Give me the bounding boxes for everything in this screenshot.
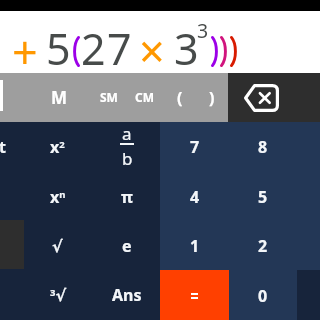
button[interactable]: ) [193, 73, 231, 122]
staticText: 7 [107, 19, 132, 78]
staticText: ) [209, 87, 215, 109]
staticText: ( [177, 87, 183, 109]
staticText: + [12, 21, 38, 82]
staticText: 5 [258, 186, 268, 208]
button[interactable]: t [0, 122, 37, 172]
button[interactable]: M [40, 73, 78, 122]
staticText: x2 [50, 136, 65, 158]
staticText: a [122, 122, 132, 145]
button[interactable]: ( [161, 73, 199, 122]
button[interactable]: 3√ [24, 270, 93, 320]
button[interactable]: π [92, 172, 161, 222]
staticText: Ans [112, 284, 142, 306]
staticText: xn [50, 186, 66, 208]
staticText: 8 [258, 136, 268, 158]
staticText: 5 [46, 19, 71, 78]
staticText: M [51, 86, 68, 109]
button[interactable]: 5 [228, 172, 297, 222]
button[interactable] [160, 270, 229, 320]
staticText: t [0, 136, 6, 158]
button[interactable]: 2 [228, 221, 297, 271]
staticText: 4 [190, 186, 200, 208]
button[interactable]: Backspace [237, 73, 285, 122]
button[interactable]: Ans [92, 270, 161, 320]
button[interactable]: e [92, 221, 161, 271]
staticText: CM [135, 89, 155, 105]
button[interactable]: SM [90, 72, 128, 121]
staticText: 1 [190, 235, 200, 257]
staticText: 2 [258, 235, 268, 257]
button[interactable]: 4 [160, 172, 229, 222]
button[interactable]: 7 [160, 122, 229, 172]
button[interactable]: 1 [160, 221, 229, 271]
button[interactable]: CM [126, 72, 164, 121]
staticText: 3√ [50, 286, 67, 305]
staticText: 2 [81, 19, 106, 78]
staticText: e [122, 235, 132, 257]
staticText: π [121, 186, 133, 208]
staticText: 0 [258, 285, 268, 307]
staticText: b [122, 147, 133, 170]
button[interactable]: 8 [228, 122, 297, 172]
button[interactable]: xn [23, 172, 92, 222]
button[interactable]: a [92, 121, 161, 171]
staticText: 3 [197, 17, 209, 44]
button[interactable]: x2 [23, 122, 92, 172]
staticText: 7 [190, 136, 200, 158]
staticText: × [139, 20, 165, 81]
button[interactable]: √ [23, 221, 92, 271]
button[interactable]: 0 [228, 271, 297, 320]
staticText: √ [52, 237, 63, 256]
staticText: 3 [174, 19, 199, 78]
staticText: SM [100, 89, 118, 105]
